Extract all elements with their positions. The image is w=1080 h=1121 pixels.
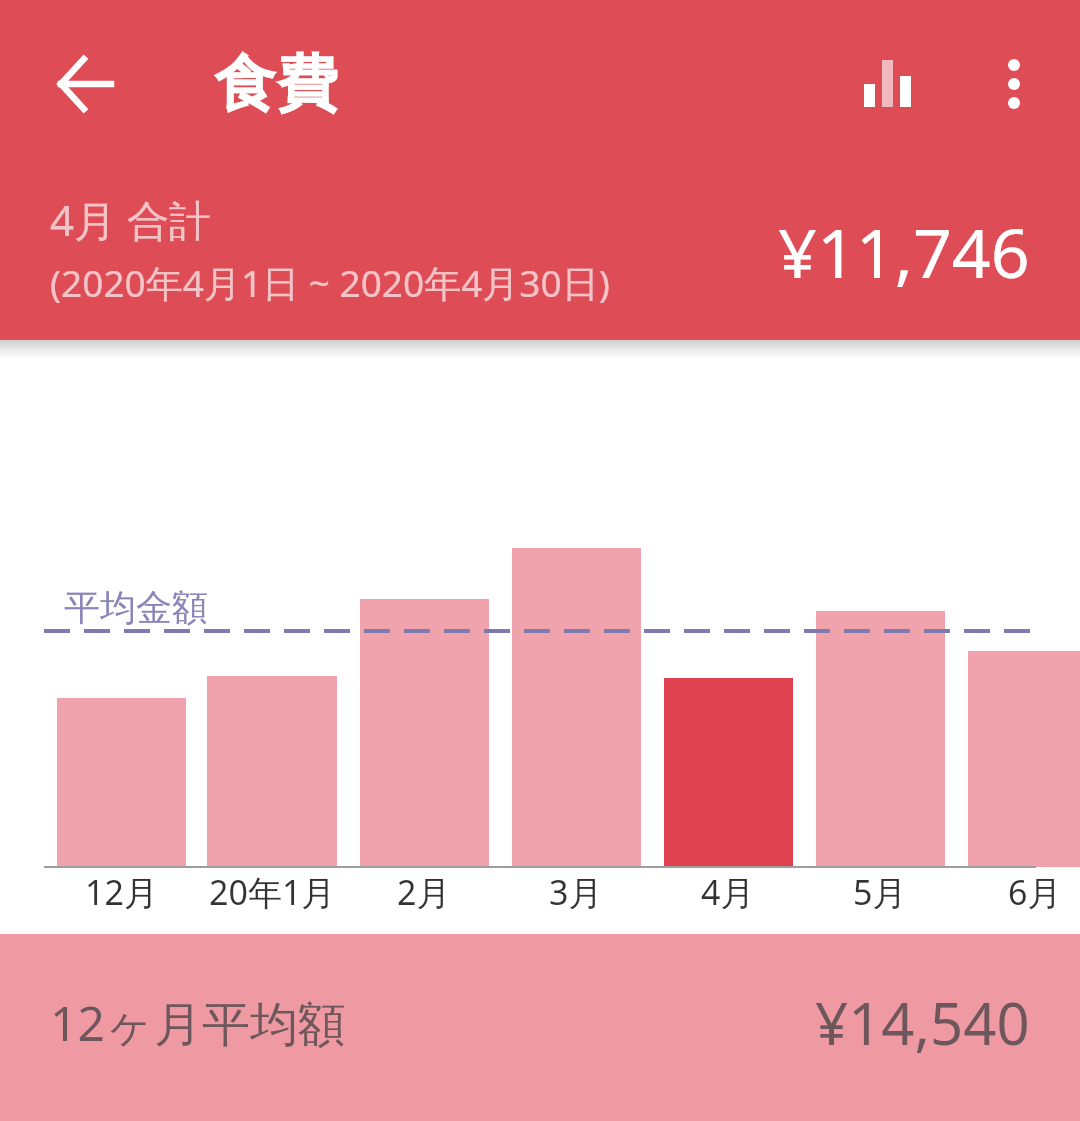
staticText: 2月 [397,869,451,915]
staticText: 食費 [214,45,338,123]
staticText: 4月 [701,869,755,915]
staticText: 5月 [853,869,907,915]
staticText: 平均金額 [64,585,208,630]
staticText: 20年1月 [209,869,336,915]
button[interactable] [50,48,122,120]
staticText: ¥11,746 [778,205,1030,298]
staticText: (2020年4月1日 ~ 2020年4月30日) [50,257,610,308]
staticText: 12ヶ月平均額 [50,990,347,1056]
staticText: 6月 [1008,869,1062,915]
button[interactable] [978,48,1050,120]
button[interactable] [852,48,924,120]
staticText: 4月 合計 [50,191,211,248]
staticText: 3月 [549,869,603,915]
staticText: ¥14,540 [815,983,1030,1062]
staticText: 12月 [85,869,158,915]
button[interactable]: 12ヶ月平均額 [0,934,1080,1121]
